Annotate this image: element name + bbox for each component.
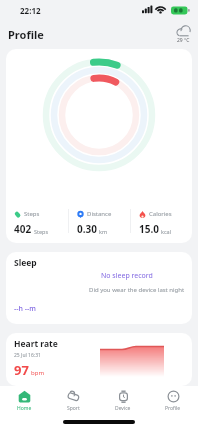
button[interactable]: Sport <box>49 390 98 412</box>
staticText: bpm <box>31 369 44 377</box>
staticText: Did you wear the device last night <box>89 286 185 294</box>
staticText: 15.0 <box>139 222 159 236</box>
staticText: Profile <box>8 27 44 42</box>
staticText: Steps <box>24 210 40 218</box>
staticText: Steps <box>34 228 49 235</box>
staticText: Heart rate <box>14 338 58 350</box>
button[interactable]: Calories <box>139 210 192 236</box>
button[interactable]: Home <box>0 390 49 412</box>
button[interactable]: Device <box>98 390 148 412</box>
staticText: kcal <box>161 228 172 235</box>
staticText: 0.30 <box>77 222 97 236</box>
staticText: 402 <box>14 222 32 236</box>
button[interactable]: Profile <box>148 390 198 412</box>
staticText: Home <box>17 405 32 412</box>
button[interactable]: Distance <box>77 210 130 236</box>
staticText: Device <box>115 405 131 412</box>
staticText: 22:12 <box>20 5 41 16</box>
staticText: No sleep record <box>101 271 153 281</box>
staticText: Distance <box>87 210 112 218</box>
staticText: Profile <box>165 405 181 412</box>
button[interactable]: Heart rate <box>6 333 192 386</box>
staticText: Sleep <box>14 257 37 269</box>
staticText: km <box>99 228 108 235</box>
staticText: --h --m <box>14 304 36 314</box>
button[interactable]: Sleep <box>6 252 192 324</box>
staticText: Sport <box>67 405 80 412</box>
staticText: 97 <box>14 361 29 379</box>
staticText: Calories <box>149 210 172 218</box>
staticText: 25 Jul 16:31 <box>14 352 41 359</box>
staticText: 29 °C <box>177 37 190 44</box>
button[interactable]: Steps <box>6 49 192 243</box>
button[interactable]: Steps <box>14 210 68 236</box>
